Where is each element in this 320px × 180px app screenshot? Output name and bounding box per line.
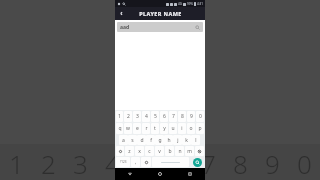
button[interactable]: Backspace <box>195 146 204 156</box>
staticText: q <box>118 125 122 132</box>
staticText: j <box>177 137 179 144</box>
staticText: p <box>198 125 202 132</box>
staticText: 4:31 <box>197 2 203 6</box>
staticText: u <box>171 125 175 132</box>
button[interactable]: 9 <box>187 111 195 122</box>
staticText: 7 <box>172 113 175 120</box>
button[interactable]: Search <box>193 158 202 167</box>
button[interactable] <box>152 157 189 167</box>
staticText: 5 <box>137 146 152 180</box>
staticText: 7 <box>201 146 216 180</box>
staticText: 1 <box>9 146 24 180</box>
button[interactable]: Shift <box>116 146 124 156</box>
staticText: 8 <box>233 146 248 180</box>
staticText: t <box>154 125 156 132</box>
staticText: i <box>181 125 183 132</box>
staticText: e <box>136 125 139 132</box>
staticText: 3 <box>73 146 88 180</box>
button[interactable]: w <box>124 123 132 134</box>
button[interactable]: Back <box>125 169 135 179</box>
button[interactable]: f <box>146 135 155 145</box>
staticText: w <box>126 125 130 132</box>
staticText: 6 <box>163 113 166 120</box>
staticText: 9 <box>265 146 280 180</box>
button[interactable]: 1 <box>116 111 123 122</box>
button[interactable]: , <box>131 157 140 167</box>
button[interactable]: b <box>165 146 174 156</box>
staticText: 5 <box>154 113 157 120</box>
button[interactable]: 0 <box>196 111 204 122</box>
button[interactable]: ?123 <box>116 157 130 167</box>
staticText: m <box>187 148 192 155</box>
staticText: z <box>128 148 131 155</box>
button[interactable]: 2 <box>124 111 132 122</box>
staticText: 1 <box>118 113 121 120</box>
staticText: c <box>148 148 151 155</box>
button[interactable]: u <box>169 123 177 134</box>
button[interactable]: 4 <box>142 111 150 122</box>
button[interactable]: d <box>137 135 146 145</box>
button[interactable]: 8 <box>178 111 186 122</box>
button[interactable]: Home <box>155 169 165 179</box>
button[interactable]: a <box>119 135 128 145</box>
button[interactable]: 5 <box>151 111 159 122</box>
staticText: v <box>158 148 161 155</box>
staticText: aad <box>120 24 130 31</box>
staticText: , <box>135 159 137 166</box>
staticText: b <box>168 148 172 155</box>
button[interactable]: o <box>187 123 195 134</box>
button[interactable]: x <box>135 146 144 156</box>
button[interactable]: p <box>196 123 204 134</box>
staticText: 2 <box>127 113 130 120</box>
staticText: s <box>131 137 134 144</box>
button[interactable]: t <box>151 123 159 134</box>
staticText: k <box>185 137 188 144</box>
button[interactable]: n <box>175 146 184 156</box>
button[interactable]: g <box>155 135 164 145</box>
staticText: o <box>189 125 193 132</box>
staticText: 8 <box>181 113 184 120</box>
staticText: n <box>178 148 182 155</box>
button[interactable]: j <box>173 135 182 145</box>
button[interactable]: k <box>182 135 191 145</box>
staticText: 4 <box>145 113 148 120</box>
button[interactable]: Emoji <box>141 157 151 167</box>
button[interactable]: i <box>178 123 186 134</box>
button[interactable]: Recents <box>185 169 195 179</box>
staticText: y <box>163 125 166 132</box>
button[interactable]: v <box>155 146 164 156</box>
staticText: l <box>195 137 197 144</box>
button[interactable]: q <box>116 123 123 134</box>
other: Search <box>195 25 200 30</box>
staticText: 0 <box>297 146 312 180</box>
staticText: 99% <box>187 2 193 6</box>
button[interactable]: z <box>125 146 134 156</box>
staticText: 0 <box>199 113 202 120</box>
button[interactable]: e <box>133 123 141 134</box>
staticText: PLAYER NAME <box>139 10 182 17</box>
staticText: h <box>167 137 171 144</box>
button[interactable]: 3 <box>133 111 141 122</box>
button[interactable]: 7 <box>169 111 177 122</box>
button[interactable]: 6 <box>160 111 168 122</box>
button[interactable]: aad <box>117 22 203 32</box>
button[interactable]: Back <box>115 7 128 20</box>
staticText: 2 <box>41 146 56 180</box>
button[interactable]: m <box>185 146 194 156</box>
button[interactable]: l <box>191 135 200 145</box>
button[interactable]: y <box>160 123 168 134</box>
staticText: 3 <box>136 113 139 120</box>
staticText: x <box>138 148 141 155</box>
button[interactable]: r <box>142 123 150 134</box>
staticText: a <box>122 137 125 144</box>
staticText: g <box>158 137 162 144</box>
button[interactable]: h <box>164 135 173 145</box>
staticText: d <box>140 137 144 144</box>
staticText: f <box>150 137 152 144</box>
staticText: 6 <box>169 146 184 180</box>
staticText: 4G <box>178 2 182 6</box>
button[interactable]: c <box>145 146 154 156</box>
staticText: r <box>145 125 148 132</box>
staticText: 9 <box>190 113 193 120</box>
button[interactable]: s <box>128 135 137 145</box>
